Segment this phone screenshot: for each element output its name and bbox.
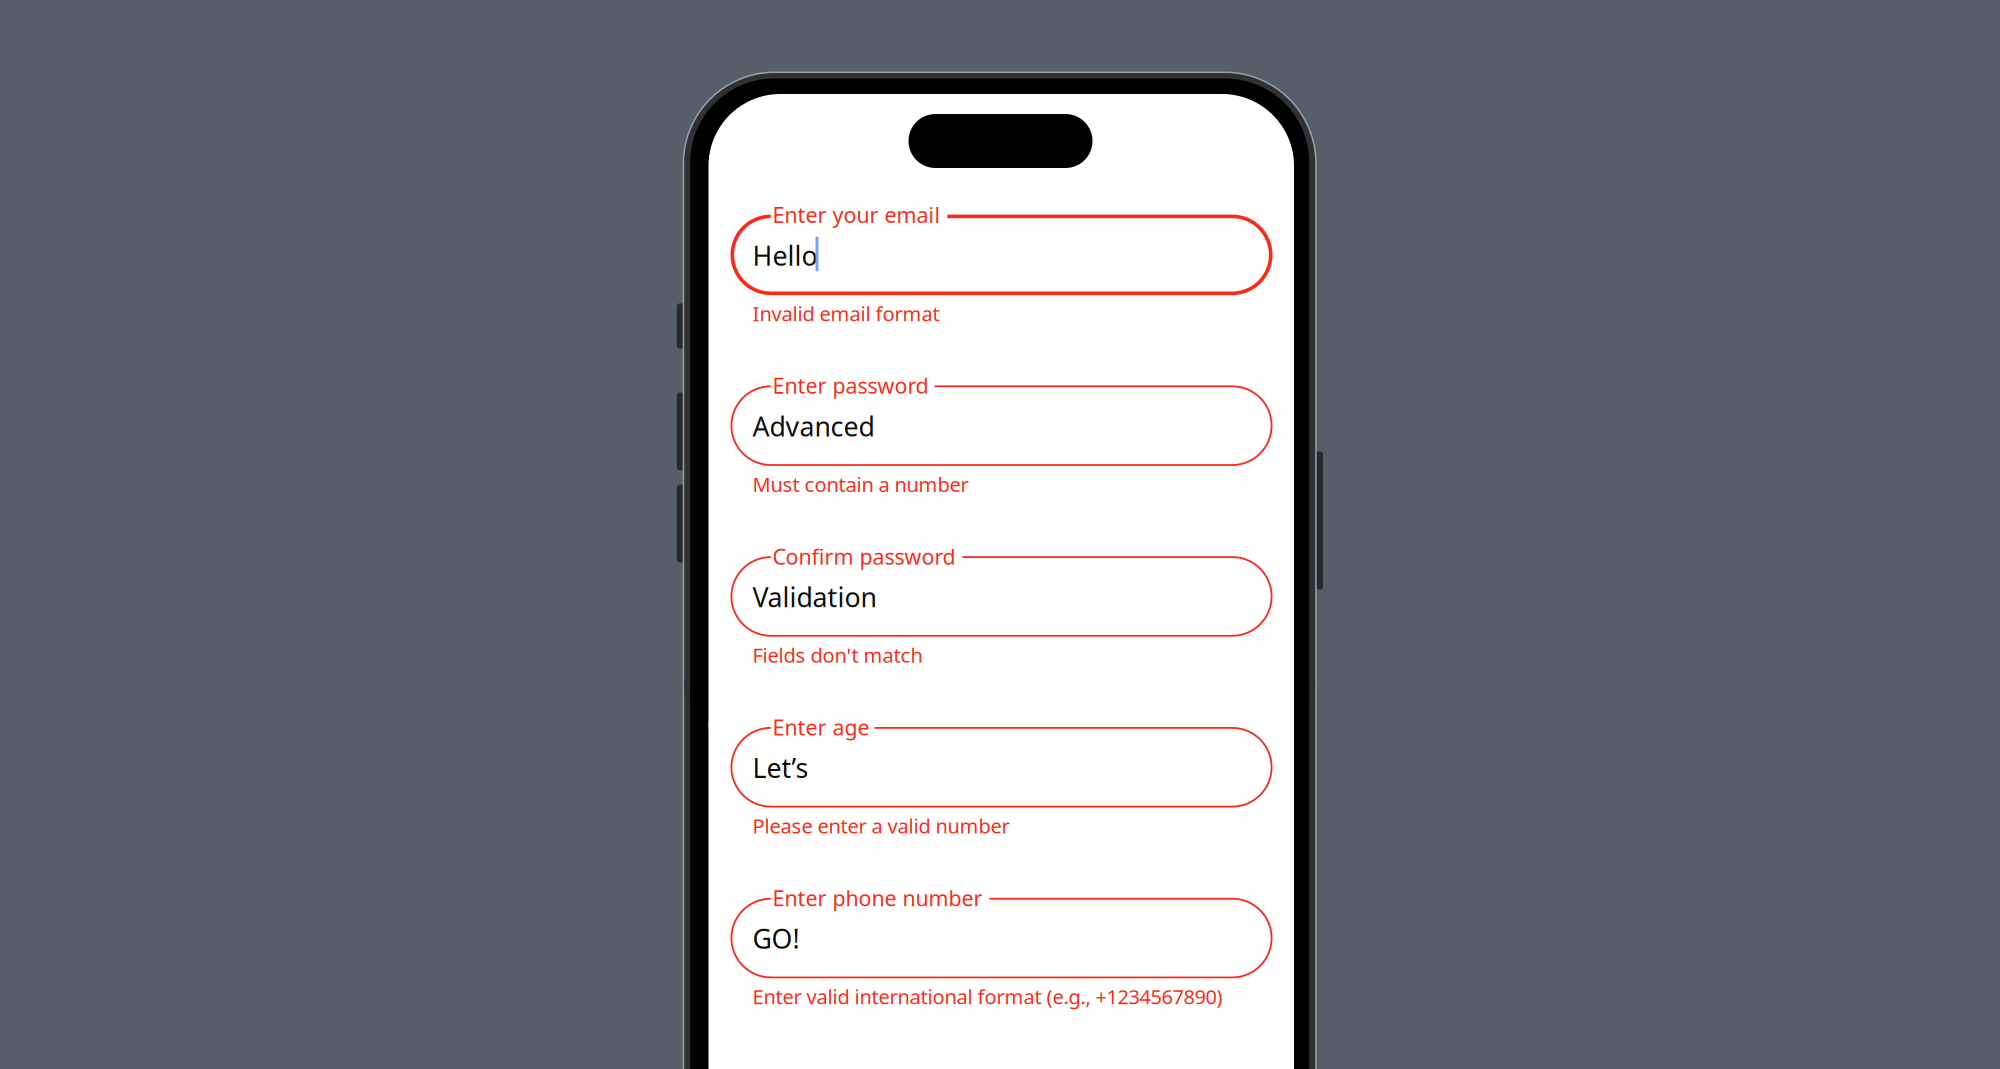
staticText: Fields don't match [752,642,922,668]
staticText: Must contain a number [752,471,968,497]
button[interactable]: Confirm password [730,556,1272,637]
staticText: Please enter a valid number [752,812,1009,839]
staticText: Enter valid international format (e.g., … [752,983,1222,1010]
button[interactable]: Enter age [730,727,1272,807]
button[interactable]: Enter your email [730,215,1272,295]
button[interactable]: Enter phone number [730,898,1272,978]
staticText: Enter age [772,713,869,741]
staticText: Enter password [772,371,928,400]
button[interactable]: Enter password [730,385,1272,466]
staticText: Invalid email format [752,300,939,327]
staticText: Hello [752,238,817,273]
staticText: Enter phone number [772,884,982,912]
staticText: Advanced [752,408,874,444]
staticText: GO! [752,921,799,956]
staticText: Let’s [752,750,808,785]
staticText: Validation [752,579,876,615]
staticText: Enter your email [772,201,940,229]
staticText: Confirm password [772,542,955,570]
